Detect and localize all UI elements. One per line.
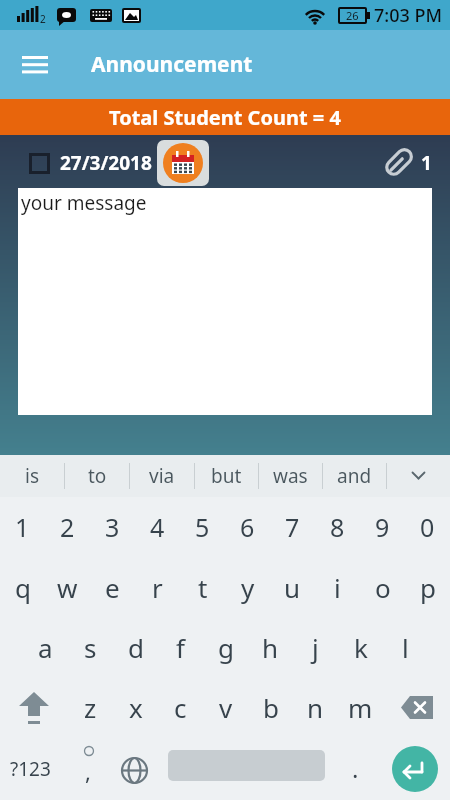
button[interactable]: o — [360, 557, 405, 617]
staticText: n — [307, 690, 324, 725]
button[interactable]: h — [248, 617, 293, 677]
staticText: was — [273, 463, 308, 489]
button[interactable]: y — [225, 557, 270, 617]
button[interactable]: b — [248, 677, 293, 738]
button[interactable]: w — [45, 557, 90, 617]
staticText: x — [129, 690, 143, 725]
button[interactable]: via — [130, 455, 194, 497]
staticText: h — [262, 630, 279, 665]
button[interactable]: p — [405, 557, 450, 617]
staticText: 27/3/2018 — [60, 150, 152, 176]
button[interactable]: was — [259, 455, 322, 497]
staticText: but — [211, 463, 242, 489]
staticText: 1 — [15, 510, 30, 544]
staticText: b — [263, 690, 279, 725]
button[interactable]: f — [158, 617, 203, 677]
staticText: q — [15, 570, 31, 605]
button[interactable]: x — [113, 677, 158, 738]
button[interactable]: 2 — [45, 497, 90, 557]
staticText: z — [84, 690, 97, 725]
staticText: w — [57, 570, 78, 605]
staticText: 2 — [40, 12, 46, 26]
staticText: o — [375, 570, 391, 605]
staticText: 0 — [420, 510, 435, 544]
button[interactable] — [387, 455, 450, 497]
staticText: r — [152, 570, 163, 605]
button[interactable]: c — [158, 677, 203, 738]
staticText: y — [241, 570, 255, 605]
button[interactable]: m — [338, 677, 383, 738]
staticText: and — [337, 463, 372, 489]
staticText: t — [198, 570, 208, 605]
button[interactable] — [114, 754, 154, 786]
staticText: e — [105, 570, 120, 605]
staticText: via — [149, 463, 175, 489]
button[interactable]: n — [293, 677, 338, 738]
staticText: g — [218, 630, 234, 665]
staticText: 5 — [195, 510, 210, 544]
button[interactable]: 9 — [360, 497, 405, 557]
staticText: 7 — [285, 510, 300, 544]
button[interactable]: k — [338, 617, 383, 677]
button[interactable] — [383, 677, 450, 738]
staticText: u — [284, 570, 301, 605]
staticText: 6 — [240, 510, 255, 544]
button[interactable]: g — [203, 617, 248, 677]
staticText: s — [84, 630, 97, 665]
button[interactable]: 3 — [90, 497, 135, 557]
button[interactable] — [0, 677, 67, 738]
staticText: Total Student Count = 4 — [109, 104, 341, 131]
button[interactable]: t — [180, 557, 225, 617]
staticText: 9 — [375, 510, 390, 544]
button[interactable]: 4 — [135, 497, 180, 557]
button[interactable] — [22, 56, 48, 74]
button[interactable]: a — [22, 617, 68, 677]
button[interactable] — [157, 140, 209, 186]
button[interactable] — [29, 153, 50, 174]
button[interactable]: your message — [18, 188, 432, 415]
staticText: 2 — [60, 510, 75, 544]
staticText: d — [128, 630, 144, 665]
staticText: j — [312, 630, 319, 665]
staticText: 4 — [150, 510, 165, 544]
button[interactable]: j — [293, 617, 338, 677]
staticText: a — [38, 630, 53, 665]
button[interactable]: z — [67, 677, 113, 738]
staticText: p — [420, 570, 436, 605]
button[interactable]: e — [90, 557, 135, 617]
staticText: c — [174, 690, 187, 725]
button[interactable]: to — [65, 455, 129, 497]
button[interactable]: 7 — [270, 497, 315, 557]
button[interactable]: u — [270, 557, 315, 617]
button[interactable]: 6 — [225, 497, 270, 557]
button[interactable]: 8 — [315, 497, 360, 557]
button[interactable]: v — [203, 677, 248, 738]
button[interactable]: but — [195, 455, 258, 497]
button[interactable]: i — [315, 557, 360, 617]
button[interactable]: l — [383, 617, 428, 677]
staticText: v — [219, 690, 233, 725]
staticText: ?123 — [10, 756, 51, 782]
button[interactable] — [392, 746, 438, 792]
staticText: to — [88, 463, 107, 489]
button[interactable]: s — [68, 617, 113, 677]
staticText: 3 — [105, 510, 120, 544]
staticText: k — [354, 630, 368, 665]
button[interactable]: r — [135, 557, 180, 617]
button[interactable]: is — [0, 455, 64, 497]
staticText: is — [25, 463, 40, 489]
button[interactable]: and — [323, 455, 386, 497]
button[interactable]: 1 — [0, 497, 45, 557]
staticText: m — [348, 690, 373, 725]
button[interactable]: d — [113, 617, 158, 677]
staticText: i — [334, 570, 341, 605]
button[interactable]: . — [352, 752, 359, 785]
button[interactable]: q — [0, 557, 45, 617]
button[interactable]: , — [85, 756, 91, 786]
staticText: your message — [21, 190, 147, 216]
button[interactable]: 0 — [405, 497, 450, 557]
button[interactable]: 5 — [180, 497, 225, 557]
staticText: 1 — [421, 150, 432, 176]
button[interactable]: ?123 — [0, 738, 60, 800]
